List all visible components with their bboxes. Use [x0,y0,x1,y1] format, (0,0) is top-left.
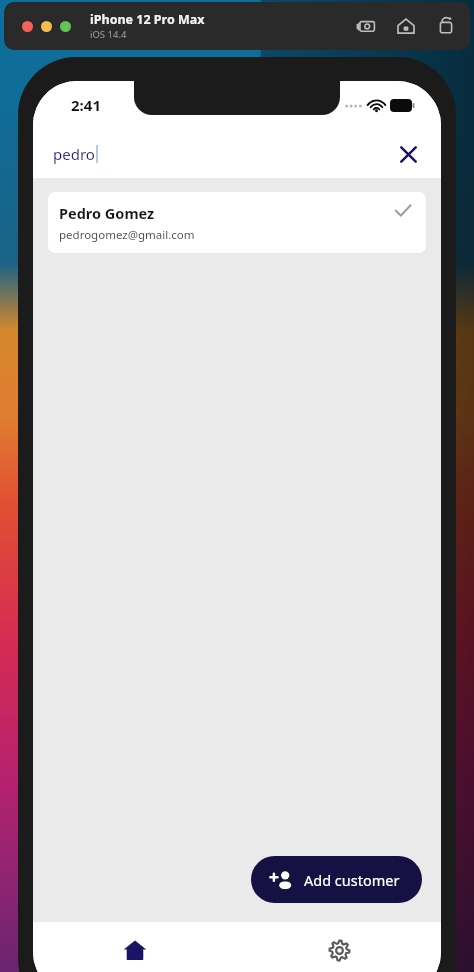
button[interactable]: Home [33,922,237,972]
button[interactable]: Add customer [251,856,422,903]
button[interactable]: Home [396,16,416,36]
button[interactable]: Pedro Gomez [48,192,426,253]
button[interactable]: Settings [237,922,441,972]
staticText: pedro [53,144,95,164]
button[interactable]: Screenshot [356,16,376,36]
button[interactable]: Rotate [436,16,456,36]
staticText: iPhone 12 Pro Max [90,11,205,28]
staticText: Pedro Gomez [59,203,155,223]
button[interactable]: Clear search [391,137,425,171]
staticText: Add customer [304,870,400,890]
staticText: pedrogomez@gmail.com [59,227,195,243]
staticText: 2:41 [71,95,101,115]
staticText: iOS 14.4 [90,28,127,41]
button[interactable]: pedro [53,144,98,164]
